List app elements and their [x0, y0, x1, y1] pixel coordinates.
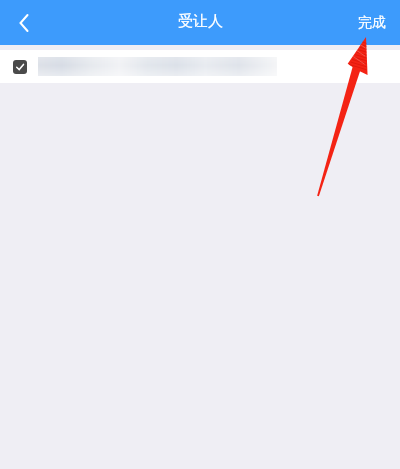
button[interactable]: Selected — [0, 50, 400, 83]
other: Selected — [13, 60, 27, 74]
staticText: 完成 — [358, 14, 386, 32]
button[interactable]: Back — [0, 0, 48, 45]
button[interactable]: 完成 — [344, 0, 400, 45]
staticText: 受让人 — [178, 12, 223, 31]
